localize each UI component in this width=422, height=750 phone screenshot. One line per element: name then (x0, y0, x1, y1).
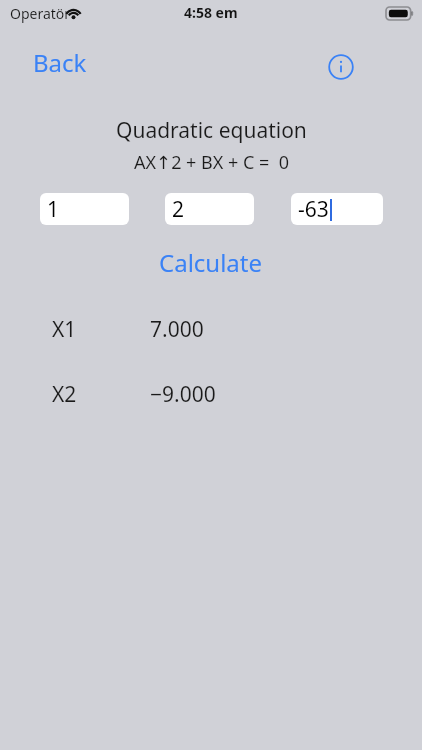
staticText: 2 (172, 195, 185, 224)
staticText: Back (33, 46, 87, 79)
staticText: -63 (298, 195, 329, 224)
button[interactable]: Back (26, 43, 94, 82)
staticText: AX↑2 + BX + C = 0 (134, 150, 289, 175)
button[interactable]: 1 (40, 193, 129, 225)
staticText: X1 (52, 315, 77, 341)
staticText: 4:58 em (184, 3, 238, 22)
staticText: X2 (52, 380, 77, 406)
staticText: 1 (47, 195, 60, 224)
button[interactable]: Information (325, 51, 357, 83)
staticText: 7.000 (150, 315, 204, 341)
staticText: Operatör (10, 4, 71, 23)
button[interactable]: -63 (291, 193, 383, 225)
staticText: −9.000 (150, 380, 216, 406)
button[interactable]: 2 (165, 193, 254, 225)
staticText: Quadratic equation (116, 116, 307, 145)
staticText: Calculate (159, 246, 263, 279)
button[interactable]: Calculate (149, 243, 273, 282)
